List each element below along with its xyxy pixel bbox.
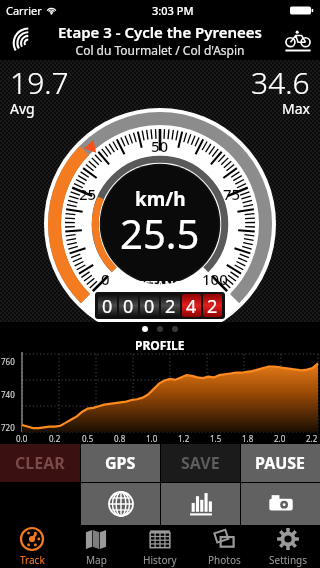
staticText: PROFILE (135, 337, 185, 353)
staticText: Etape 3 - Cycle the Pyrenees (40, 22, 280, 42)
staticText: 25.5 (120, 206, 200, 260)
staticText: SAVE (181, 452, 220, 474)
button[interactable]: Speedometer 25.5 km/h (44, 108, 276, 340)
button[interactable]: Statistics (161, 483, 240, 525)
staticText: Map (86, 553, 107, 567)
button[interactable]: Signal (8, 27, 34, 53)
button[interactable]: Settings (256, 525, 320, 568)
button[interactable] (172, 326, 178, 332)
staticText: 4 (186, 294, 197, 317)
staticText: 2 (207, 294, 218, 317)
button[interactable]: CLEAR (0, 444, 80, 482)
staticText: Track (20, 553, 45, 567)
staticText: 3:03 PM (152, 3, 194, 18)
staticText: km/h (135, 186, 186, 212)
staticText: 760 (1, 356, 15, 367)
button[interactable]: Camera (241, 483, 320, 525)
staticText: GPS (105, 452, 136, 474)
staticText: 100 (202, 269, 228, 289)
button[interactable]: SAVE (161, 444, 240, 482)
staticText: 19.7 (10, 62, 69, 103)
staticText: 0.0 (16, 433, 28, 444)
staticText: 2.0 (274, 433, 286, 444)
button[interactable]: Map (64, 525, 128, 568)
staticText: 0 (101, 269, 110, 289)
button[interactable]: Activity type: cycling (284, 26, 312, 54)
staticText: 1.2 (178, 433, 190, 444)
staticText: 34.6 (251, 62, 310, 103)
staticText: CLEAR (15, 452, 65, 474)
button[interactable] (142, 326, 148, 332)
staticText: Photos (208, 553, 241, 567)
button[interactable]: History (128, 525, 192, 568)
staticText: 75 (223, 184, 241, 204)
staticText: Col du Tourmalet / Col d'Aspin (40, 42, 280, 58)
button[interactable] (157, 326, 163, 332)
staticText: 2.2 (306, 433, 318, 444)
staticText: Carrier (6, 3, 42, 18)
button[interactable]: GPS (81, 444, 160, 482)
staticText: 0.5 (82, 433, 94, 444)
staticText: 2 (165, 294, 176, 317)
staticText: 0.8 (114, 433, 126, 444)
staticText: 720 (1, 422, 15, 433)
staticText: Max (282, 99, 310, 118)
button[interactable]: Track (0, 525, 64, 568)
button[interactable]: Photos (192, 525, 256, 568)
staticText: Avg (10, 99, 35, 118)
staticText: 0 (123, 294, 134, 317)
staticText: History (143, 553, 177, 567)
staticText: 1.0 (146, 433, 158, 444)
button[interactable]: Map view (81, 483, 160, 525)
staticText: 50 (151, 136, 169, 156)
staticText: 0.2 (49, 433, 61, 444)
staticText: DISTANCE (131, 277, 189, 293)
staticText: Settings (269, 553, 308, 567)
staticText: 0 (144, 294, 155, 317)
button[interactable]: PAUSE (241, 444, 320, 482)
staticText: 25 (79, 184, 97, 204)
staticText: 740 (1, 389, 15, 400)
staticText: 0 (102, 294, 113, 317)
staticText: 1.8 (242, 433, 254, 444)
staticText: 1.5 (210, 433, 222, 444)
staticText: PAUSE (255, 452, 306, 474)
